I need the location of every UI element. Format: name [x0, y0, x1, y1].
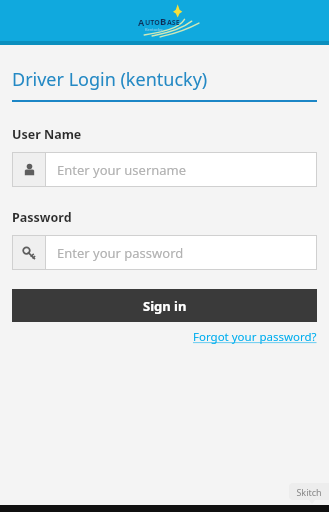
button[interactable]: Sign in [12, 289, 317, 322]
button[interactable]: User name [12, 152, 317, 187]
staticText: A [138, 16, 145, 28]
staticText: Skitch [296, 486, 322, 498]
staticText: ASE [167, 18, 180, 28]
staticText: B [160, 15, 167, 28]
staticText: Password [12, 209, 72, 226]
staticText: Kentucky [145, 27, 163, 32]
staticText: UTO [145, 18, 160, 28]
staticText: Sign in [143, 297, 187, 315]
staticText: Enter your password [57, 244, 184, 262]
staticText: Enter your username [57, 161, 187, 179]
button[interactable]: Forgot your password? [193, 329, 317, 345]
button[interactable]: Password [12, 235, 317, 270]
staticText: User Name [12, 126, 82, 143]
staticText: Driver Login (kentucky) [12, 67, 208, 92]
staticText: Forgot your password? [193, 329, 317, 345]
